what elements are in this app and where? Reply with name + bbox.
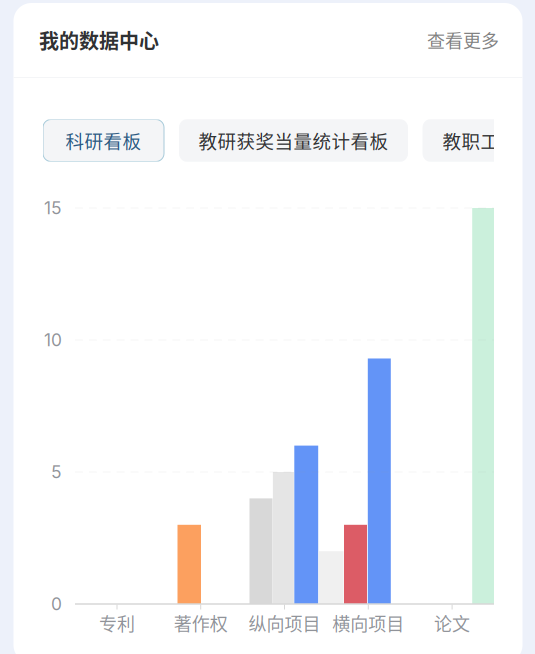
staticText: 著作权: [174, 610, 228, 636]
button[interactable]: 教职工获奖当量统计: [423, 119, 535, 161]
staticText: 15: [44, 197, 62, 218]
button[interactable]: 查看更多: [427, 27, 499, 53]
staticText: 5: [51, 461, 62, 482]
staticText: 论文: [434, 610, 470, 636]
staticText: 教职工获奖当量统计: [442, 127, 535, 154]
button[interactable]: 教研获奖当量统计看板: [179, 119, 407, 161]
staticText: 我的数据中心: [39, 25, 159, 54]
staticText: 纵向项目: [248, 610, 320, 636]
staticText: 0: [51, 593, 62, 614]
staticText: 查看更多: [427, 27, 499, 53]
staticText: 专利: [99, 610, 135, 636]
staticText: 科研看板: [65, 127, 141, 154]
button[interactable]: 科研看板: [43, 119, 164, 161]
staticText: 横向项目: [332, 610, 404, 636]
staticText: 教研获奖当量统计看板: [198, 127, 388, 154]
staticText: 10: [44, 329, 62, 350]
